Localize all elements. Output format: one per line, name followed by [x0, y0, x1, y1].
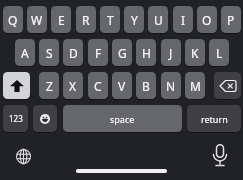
button[interactable]: A — [15, 39, 35, 66]
button[interactable]: X — [63, 72, 83, 99]
staticText: return — [201, 113, 228, 125]
button[interactable]: U — [148, 6, 168, 33]
staticText: space — [110, 113, 135, 125]
button[interactable]: 123 — [3, 105, 28, 132]
staticText: V — [118, 78, 126, 94]
staticText: K — [191, 45, 199, 61]
staticText: G — [118, 45, 127, 61]
staticText: L — [216, 45, 223, 61]
staticText: H — [142, 45, 151, 61]
button[interactable]: P — [221, 6, 241, 33]
button[interactable]: T — [100, 6, 120, 33]
button[interactable]: return — [187, 105, 241, 132]
button[interactable]: W — [27, 6, 47, 33]
button[interactable]: V — [112, 72, 132, 99]
button[interactable]: D — [63, 39, 83, 66]
staticText: U — [154, 12, 163, 28]
staticText: J — [169, 45, 173, 61]
staticText: Q — [8, 12, 18, 28]
button[interactable] — [214, 72, 241, 99]
button[interactable] — [3, 72, 30, 99]
staticText: D — [69, 45, 78, 61]
staticText: O — [202, 12, 212, 28]
button[interactable]: E — [51, 6, 71, 33]
button[interactable]: Q — [3, 6, 23, 33]
button[interactable]: K — [185, 39, 205, 66]
button[interactable]: I — [173, 6, 193, 33]
button[interactable]: F — [88, 39, 108, 66]
button[interactable]: S — [39, 39, 59, 66]
button[interactable]: space — [63, 105, 182, 132]
staticText: N — [166, 78, 176, 94]
button[interactable]: Z — [39, 72, 59, 99]
staticText: M — [190, 78, 201, 94]
button[interactable]: H — [136, 39, 156, 66]
button[interactable] — [33, 105, 57, 132]
button[interactable]: N — [161, 72, 181, 99]
staticText: F — [95, 45, 102, 61]
button[interactable]: R — [76, 6, 96, 33]
button[interactable]: B — [136, 72, 156, 99]
staticText: 123 — [9, 113, 23, 124]
staticText: I — [181, 12, 186, 28]
staticText: T — [107, 12, 114, 28]
staticText: C — [94, 78, 102, 94]
button[interactable] — [9, 142, 37, 170]
staticText: B — [142, 78, 150, 94]
button[interactable]: G — [112, 39, 132, 66]
button[interactable]: M — [185, 72, 205, 99]
staticText: S — [46, 45, 53, 61]
staticText: Y — [131, 12, 138, 28]
button[interactable]: O — [197, 6, 217, 33]
staticText: A — [21, 45, 29, 61]
staticText: P — [227, 12, 235, 28]
button[interactable] — [206, 141, 234, 171]
button[interactable]: L — [209, 39, 229, 66]
button[interactable]: C — [88, 72, 108, 99]
staticText: W — [31, 12, 43, 28]
staticText: R — [82, 12, 90, 28]
staticText: X — [69, 78, 77, 94]
staticText: Z — [46, 78, 53, 94]
staticText: E — [58, 12, 65, 28]
button[interactable]: Y — [124, 6, 144, 33]
button[interactable]: J — [161, 39, 181, 66]
